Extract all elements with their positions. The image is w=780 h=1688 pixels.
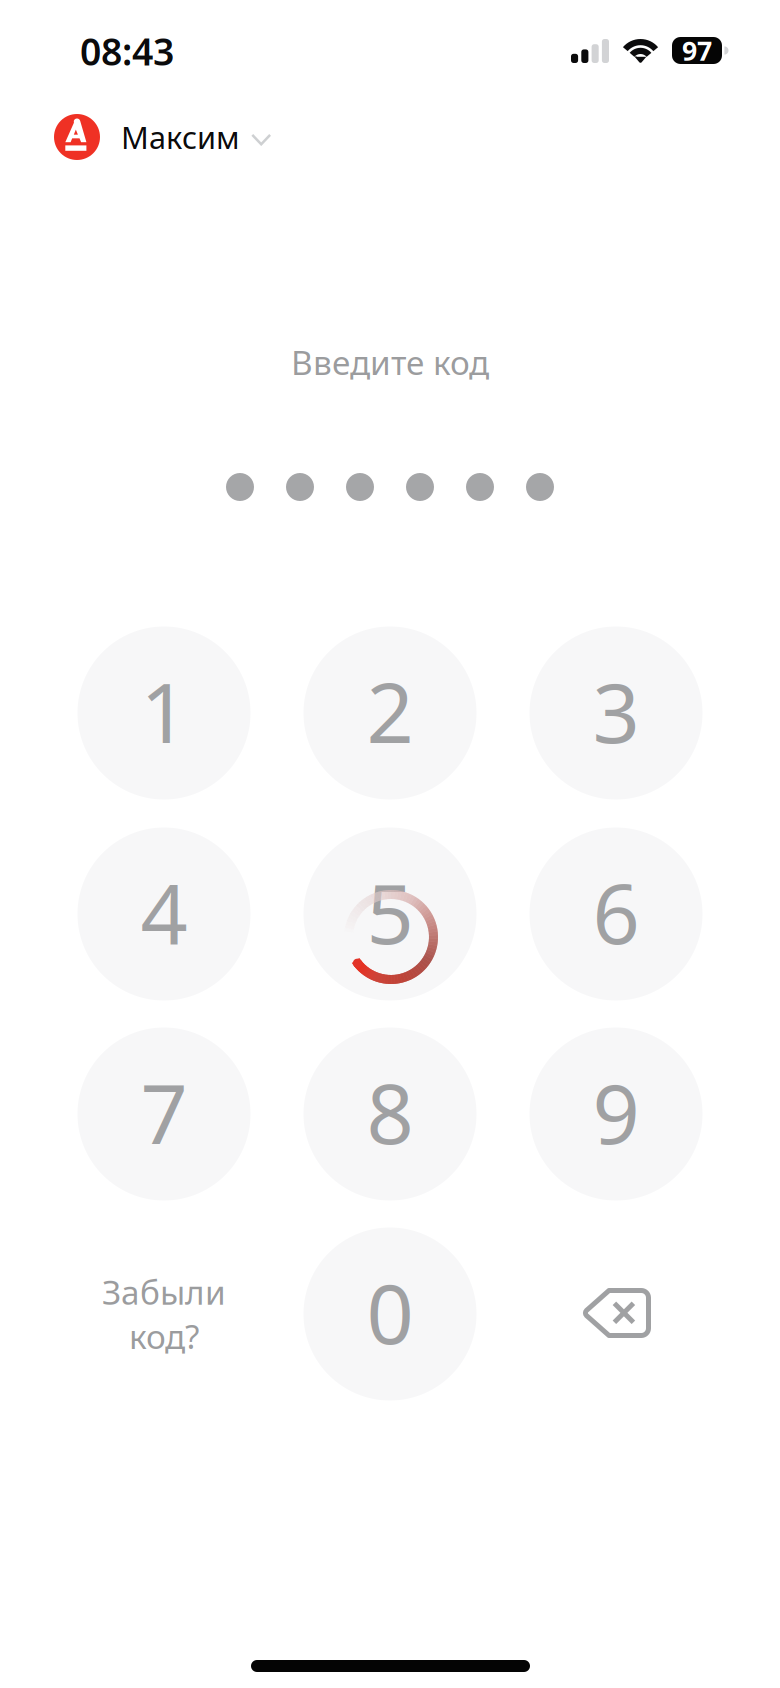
button[interactable]: 7 bbox=[77, 1027, 250, 1200]
staticText: Забыли bbox=[102, 1270, 226, 1314]
staticText: 5 bbox=[366, 857, 413, 967]
staticText: 0 bbox=[366, 1257, 413, 1367]
staticText: 97 bbox=[682, 33, 712, 68]
button[interactable]: 1 bbox=[77, 626, 250, 799]
button[interactable]: Забыли код? bbox=[64, 1227, 264, 1400]
staticText: 7 bbox=[140, 1057, 187, 1167]
button[interactable]: 5 bbox=[303, 827, 476, 1000]
button[interactable]: Максим bbox=[52, 112, 282, 162]
staticText: Введите код bbox=[291, 340, 489, 384]
staticText: 3 bbox=[592, 656, 639, 766]
button[interactable]: 6 bbox=[529, 827, 702, 1000]
staticText: 6 bbox=[592, 857, 639, 967]
button[interactable]: 4 bbox=[77, 827, 250, 1000]
staticText: 8 bbox=[366, 1057, 413, 1167]
button[interactable]: 9 bbox=[529, 1027, 702, 1200]
button[interactable]: 3 bbox=[529, 626, 702, 799]
button[interactable]: 8 bbox=[303, 1027, 476, 1200]
staticText: 1 bbox=[140, 656, 187, 766]
staticText: 08:43 bbox=[80, 26, 174, 76]
staticText: 4 bbox=[140, 857, 187, 967]
staticText: Максим bbox=[121, 117, 240, 157]
staticText: 2 bbox=[366, 656, 413, 766]
staticText: код? bbox=[129, 1314, 199, 1358]
staticText: 9 bbox=[592, 1057, 639, 1167]
button[interactable]: 2 bbox=[303, 626, 476, 799]
button[interactable]: Delete bbox=[529, 1227, 702, 1400]
button[interactable]: 0 bbox=[303, 1227, 476, 1400]
